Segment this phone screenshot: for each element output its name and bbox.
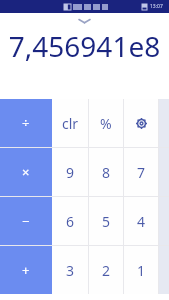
button[interactable]: Settings xyxy=(124,99,158,147)
button[interactable]: 3 xyxy=(52,246,88,294)
staticText: + xyxy=(22,261,30,279)
staticText: 2 xyxy=(102,261,111,280)
button[interactable]: 8 xyxy=(89,148,123,196)
staticText: ÷ xyxy=(22,114,30,132)
staticText: % xyxy=(100,114,112,133)
staticText: 4 xyxy=(137,212,146,231)
staticText: 13:07 xyxy=(150,3,163,10)
button[interactable]: 4 xyxy=(124,197,158,245)
staticText: 6 xyxy=(66,212,75,231)
staticText: − xyxy=(22,212,30,230)
button[interactable]: Expand history xyxy=(79,18,90,24)
button[interactable]: 5 xyxy=(89,197,123,245)
staticText: 1 xyxy=(137,261,146,280)
staticText: 7,456941e8 xyxy=(0,27,169,65)
button[interactable]: ÷ xyxy=(0,99,52,147)
staticText: 8 xyxy=(102,163,111,182)
staticText: 9 xyxy=(66,163,75,182)
button[interactable]: × xyxy=(0,148,52,196)
button[interactable]: 1 xyxy=(124,246,158,294)
button[interactable]: 9 xyxy=(52,148,88,196)
button[interactable]: clr xyxy=(52,99,88,147)
staticText: 5 xyxy=(102,212,111,231)
button[interactable]: % xyxy=(89,99,123,147)
staticText: 3 xyxy=(66,261,75,280)
staticText: clr xyxy=(62,114,79,133)
button[interactable]: 2 xyxy=(89,246,123,294)
button[interactable]: − xyxy=(0,197,52,245)
staticText: 7 xyxy=(137,163,146,182)
button[interactable]: 7 xyxy=(124,148,158,196)
button[interactable]: 6 xyxy=(52,197,88,245)
staticText: × xyxy=(22,163,30,181)
button[interactable]: + xyxy=(0,246,52,294)
